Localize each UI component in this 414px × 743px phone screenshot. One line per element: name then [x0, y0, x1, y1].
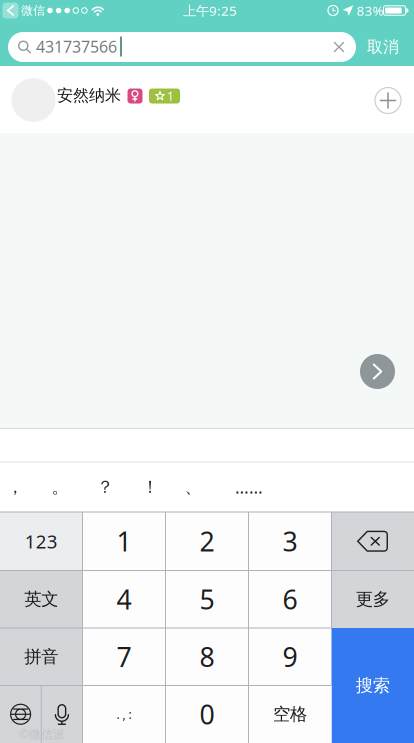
- button[interactable]: 搜索: [331, 628, 414, 743]
- button[interactable]: 2: [165, 512, 248, 570]
- button[interactable]: 、: [172, 464, 214, 510]
- staticText: ，: [6, 476, 23, 498]
- button[interactable]: ！: [129, 464, 171, 510]
- button[interactable]: 更多结果: [360, 354, 395, 389]
- button[interactable]: 空格: [248, 685, 331, 743]
- button[interactable]: 3: [248, 512, 331, 570]
- staticText: 431737566: [36, 36, 117, 57]
- button[interactable]: 0: [165, 685, 248, 743]
- button[interactable]: . , :: [82, 685, 165, 743]
- staticText: 83%: [356, 2, 383, 19]
- button[interactable]: ？: [84, 464, 126, 510]
- button[interactable]: 。: [39, 464, 81, 510]
- button[interactable]: 5: [165, 570, 248, 628]
- button[interactable]: 1: [82, 512, 165, 570]
- staticText: 8: [199, 639, 214, 674]
- staticText: 3: [282, 523, 297, 559]
- staticText: 空格: [273, 704, 307, 725]
- staticText: 安然纳米: [57, 86, 121, 105]
- button[interactable]: 4: [82, 570, 165, 628]
- staticText: 0: [199, 696, 214, 732]
- staticText: ……: [235, 475, 263, 498]
- button[interactable]: 删除: [331, 512, 414, 570]
- staticText: 、: [184, 476, 201, 498]
- button[interactable]: 9: [248, 628, 331, 685]
- button[interactable]: 取消: [354, 25, 412, 69]
- staticText: 1: [167, 88, 174, 104]
- staticText: 上午9:25: [183, 2, 237, 19]
- staticText: 取消: [367, 37, 399, 57]
- staticText: 2: [199, 523, 214, 559]
- button[interactable]: 123: [0, 512, 82, 570]
- button[interactable]: 7: [82, 628, 165, 685]
- staticText: ©微信派: [19, 726, 65, 742]
- button[interactable]: ，: [0, 464, 36, 510]
- button[interactable]: 切换键盘: [0, 685, 41, 743]
- staticText: 英文: [24, 589, 58, 610]
- button[interactable]: 英文: [0, 570, 82, 628]
- staticText: 1: [116, 523, 131, 559]
- staticText: 更多: [356, 589, 390, 610]
- staticText: . , :: [116, 706, 131, 722]
- staticText: 9: [282, 639, 297, 674]
- staticText: 7: [116, 639, 131, 674]
- button[interactable]: 安然纳米: [0, 66, 414, 133]
- staticText: 5: [199, 581, 214, 617]
- staticText: ！: [141, 476, 158, 498]
- staticText: 6: [282, 581, 297, 617]
- button[interactable]: 返回微信: [2, 2, 18, 18]
- button[interactable]: 清除: [334, 42, 343, 51]
- staticText: 。: [51, 476, 68, 498]
- staticText: 4: [116, 581, 131, 617]
- button[interactable]: 8: [165, 628, 248, 685]
- staticText: 拼音: [24, 646, 58, 667]
- staticText: ？: [96, 476, 113, 498]
- button[interactable]: 更多: [331, 570, 414, 628]
- button[interactable]: 拼音: [0, 628, 82, 685]
- button[interactable]: 语音输入: [41, 685, 82, 743]
- button[interactable]: 6: [248, 570, 331, 628]
- button[interactable]: ……: [228, 464, 270, 510]
- staticText: 搜索: [356, 675, 390, 696]
- staticText: 微信: [21, 3, 45, 18]
- button[interactable]: 添加: [375, 87, 401, 113]
- staticText: 123: [25, 529, 58, 554]
